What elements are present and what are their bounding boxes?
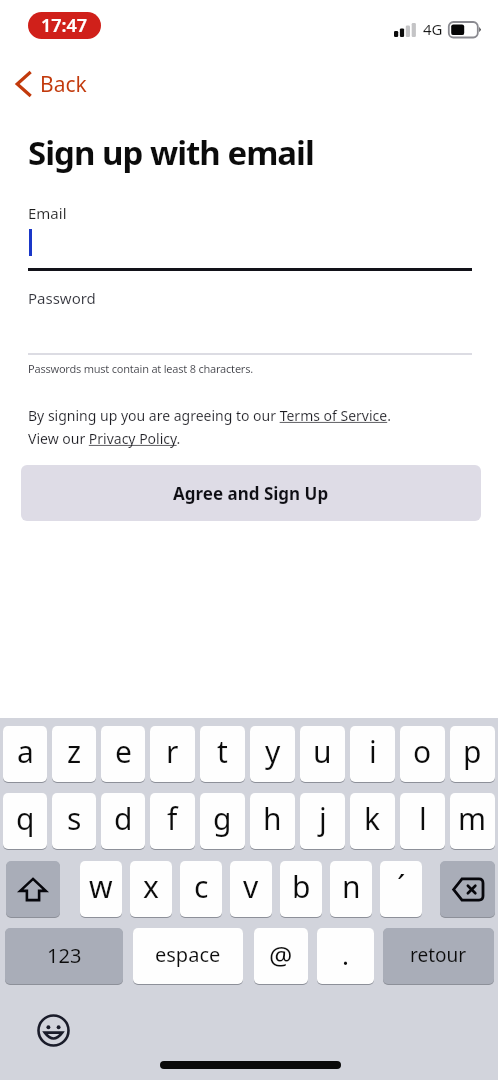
staticText: q — [16, 798, 35, 839]
button[interactable]: Backspace — [440, 861, 495, 917]
button[interactable]: m — [450, 793, 495, 849]
staticText: 123 — [47, 942, 82, 969]
button[interactable]: e — [101, 726, 145, 782]
button[interactable]: b — [280, 861, 322, 917]
staticText: espace — [155, 941, 221, 968]
staticText: t — [217, 731, 228, 772]
button[interactable]: 123 — [5, 928, 123, 984]
button[interactable]: y — [250, 726, 295, 782]
button[interactable]: @ — [254, 928, 308, 984]
staticText: v — [243, 866, 259, 907]
staticText: w — [89, 866, 113, 907]
staticText: l — [419, 798, 427, 839]
button[interactable]: Email text field — [28, 200, 472, 271]
staticText: g — [213, 798, 232, 839]
button[interactable]: k — [350, 793, 395, 849]
staticText: j — [319, 798, 327, 839]
staticText: m — [458, 798, 487, 839]
button[interactable]: . — [317, 928, 374, 984]
button[interactable]: z — [52, 726, 96, 782]
button[interactable]: t — [200, 726, 245, 782]
staticText: i — [369, 731, 377, 772]
button[interactable]: ´ — [380, 861, 422, 917]
button[interactable]: d — [101, 793, 145, 849]
button[interactable]: f — [150, 793, 195, 849]
staticText: Agree and Sign Up — [173, 482, 329, 505]
staticText: s — [67, 798, 82, 839]
button[interactable]: j — [300, 793, 345, 849]
button[interactable]: p — [450, 726, 495, 782]
button[interactable]: v — [230, 861, 272, 917]
staticText: Email — [28, 203, 67, 223]
staticText: 4G — [423, 19, 443, 39]
button[interactable]: Shift — [6, 861, 60, 917]
button[interactable]: Emoji keyboard — [37, 1014, 70, 1047]
staticText: h — [263, 798, 282, 839]
staticText: @ — [269, 937, 293, 972]
staticText: b — [292, 866, 311, 907]
staticText: Back — [40, 70, 87, 99]
staticText: d — [114, 798, 133, 839]
button[interactable]: Back — [14, 66, 87, 102]
button[interactable]: a — [3, 726, 47, 782]
staticText: Sign up with email — [28, 130, 314, 175]
staticText: u — [313, 731, 332, 772]
staticText: y — [265, 731, 281, 772]
button[interactable]: n — [330, 861, 372, 917]
button[interactable]: espace — [133, 928, 243, 984]
button[interactable]: w — [80, 861, 122, 917]
staticText: 17:47 — [41, 13, 88, 38]
button[interactable]: c — [180, 861, 222, 917]
staticText: Passwords must contain at least 8 charac… — [28, 361, 253, 376]
staticText: a — [17, 731, 34, 772]
button[interactable]: Password text field — [28, 285, 472, 355]
staticText: retour — [410, 942, 467, 968]
staticText: k — [364, 798, 381, 839]
staticText: Password — [28, 288, 96, 308]
staticText: p — [463, 731, 482, 772]
button[interactable]: Agree and Sign Up — [21, 465, 481, 521]
button[interactable]: u — [300, 726, 345, 782]
staticText: r — [166, 731, 179, 772]
staticText: f — [167, 798, 178, 839]
button[interactable]: h — [250, 793, 295, 849]
staticText: c — [194, 866, 209, 907]
staticText: z — [67, 731, 82, 772]
button[interactable]: o — [400, 726, 445, 782]
button[interactable]: q — [3, 793, 47, 849]
button[interactable]: s — [52, 793, 96, 849]
button[interactable]: i — [350, 726, 395, 782]
staticText: n — [342, 866, 361, 907]
staticText: o — [413, 731, 432, 772]
button[interactable]: g — [200, 793, 245, 849]
button[interactable]: r — [150, 726, 195, 782]
button[interactable]: x — [130, 861, 172, 917]
staticText: . — [342, 937, 349, 972]
staticText: x — [143, 866, 159, 907]
staticText: ´ — [397, 866, 406, 907]
button[interactable]: retour — [383, 928, 494, 984]
staticText: e — [115, 731, 132, 772]
button[interactable]: l — [400, 793, 445, 849]
staticText: By signing up you are agreeing to our Te… — [28, 406, 391, 425]
staticText: View our Privacy Policy. — [28, 429, 181, 448]
